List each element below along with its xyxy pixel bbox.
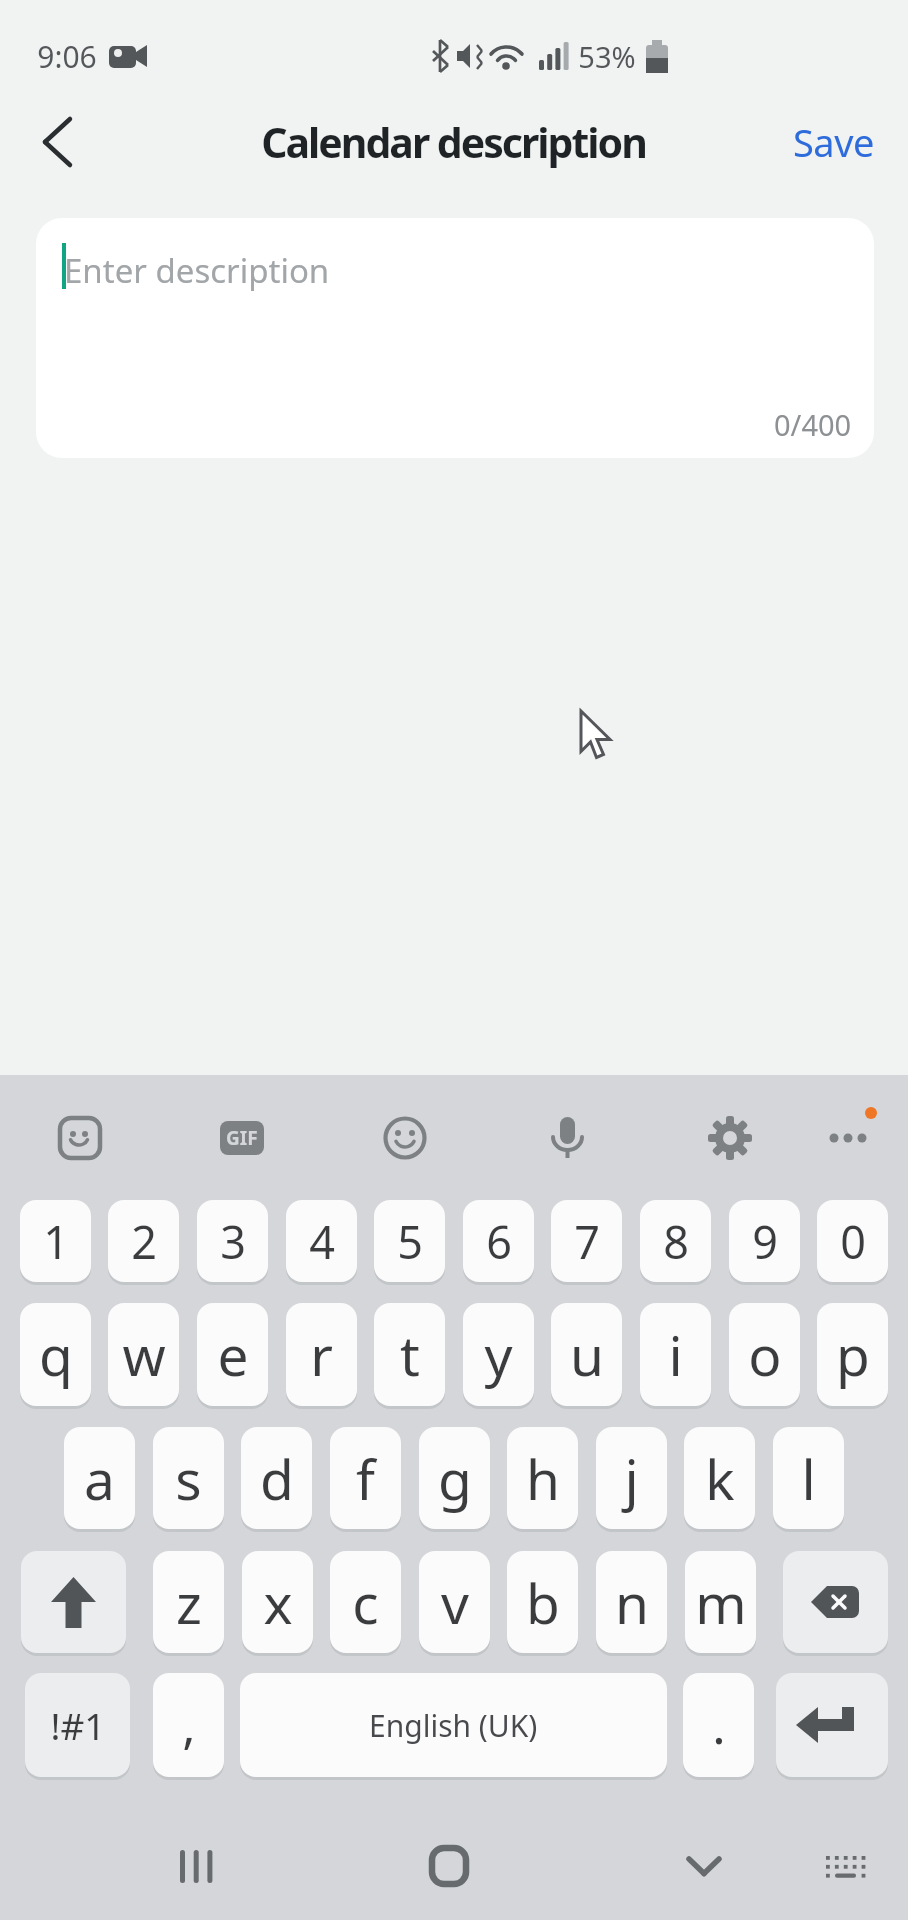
button[interactable]: p [817, 1303, 888, 1406]
button[interactable]: 4 [286, 1200, 357, 1282]
staticText: 4 [309, 1211, 335, 1272]
button[interactable] [21, 1551, 126, 1653]
staticText: Calendar description [261, 114, 646, 170]
staticText: English (UK) [369, 1705, 538, 1746]
staticText: 9:06 [37, 36, 97, 77]
staticText: 0/400 [774, 405, 852, 444]
button[interactable]: a [64, 1427, 135, 1529]
staticText: x [263, 1565, 293, 1640]
staticText: 0 [840, 1211, 866, 1272]
button[interactable]: Enter description [36, 218, 874, 458]
button[interactable]: m [685, 1551, 756, 1653]
staticText: 53% [578, 37, 636, 76]
staticText: r [310, 1317, 333, 1392]
staticText: e [217, 1317, 249, 1392]
staticText: !#1 [50, 1700, 106, 1750]
button[interactable]: 3 [197, 1200, 268, 1282]
button[interactable]: 9 [729, 1200, 800, 1282]
button[interactable]: 1 [20, 1200, 91, 1282]
button[interactable] [706, 1114, 754, 1162]
button[interactable]: u [551, 1303, 622, 1406]
staticText: f [356, 1441, 375, 1516]
staticText: c [352, 1565, 379, 1640]
staticText: p [836, 1317, 870, 1392]
button[interactable]: o [729, 1303, 800, 1406]
button[interactable]: Save [778, 110, 888, 174]
staticText: 1 [43, 1211, 69, 1272]
button[interactable] [822, 1112, 874, 1164]
staticText: t [400, 1317, 420, 1392]
staticText: i [668, 1317, 683, 1392]
staticText: l [801, 1441, 816, 1516]
staticText: o [748, 1317, 782, 1392]
staticText: s [175, 1441, 202, 1516]
button[interactable]: GIF [220, 1121, 264, 1155]
staticText: 8 [663, 1211, 689, 1272]
button[interactable] [240, 1673, 667, 1777]
button[interactable] [382, 1115, 428, 1161]
button[interactable]: v [419, 1551, 490, 1653]
button[interactable]: f [330, 1427, 401, 1529]
staticText: h [526, 1441, 560, 1516]
button[interactable]: 6 [463, 1200, 534, 1282]
staticText: w [122, 1317, 166, 1392]
button[interactable]: w [108, 1303, 179, 1406]
button[interactable]: 0 [817, 1200, 888, 1282]
button[interactable]: d [241, 1427, 312, 1529]
button[interactable]: g [419, 1427, 490, 1529]
staticText: v [441, 1565, 469, 1640]
staticText: . [712, 1691, 726, 1759]
button[interactable]: l [773, 1427, 844, 1529]
button[interactable] [168, 1838, 224, 1894]
staticText: m [695, 1565, 747, 1640]
button[interactable] [783, 1551, 888, 1653]
button[interactable]: x [242, 1551, 313, 1653]
button[interactable] [819, 1840, 871, 1892]
button[interactable]: 5 [374, 1200, 445, 1282]
button[interactable] [676, 1838, 732, 1894]
button[interactable]: !#1 [25, 1673, 130, 1777]
staticText: a [84, 1441, 115, 1516]
staticText: GIF [226, 1125, 258, 1151]
button[interactable]: y [463, 1303, 534, 1406]
button[interactable]: j [596, 1427, 667, 1529]
button[interactable] [541, 1111, 593, 1163]
button[interactable] [776, 1673, 888, 1777]
button[interactable]: i [640, 1303, 711, 1406]
button[interactable]: r [286, 1303, 357, 1406]
staticText: q [39, 1317, 73, 1392]
button[interactable]: . [683, 1673, 754, 1777]
staticText: d [260, 1441, 294, 1516]
button[interactable]: h [507, 1427, 578, 1529]
button[interactable]: n [596, 1551, 667, 1653]
button[interactable]: q [20, 1303, 91, 1406]
staticText: Save [793, 116, 874, 168]
staticText: j [624, 1441, 639, 1516]
staticText: , [182, 1691, 196, 1759]
button[interactable]: 8 [640, 1200, 711, 1282]
button[interactable]: e [197, 1303, 268, 1406]
staticText: y [484, 1317, 513, 1392]
button[interactable]: s [153, 1427, 224, 1529]
staticText: g [438, 1441, 472, 1516]
staticText: Enter description [64, 248, 330, 293]
button[interactable] [421, 1838, 477, 1894]
staticText: k [705, 1441, 735, 1516]
button[interactable] [20, 106, 92, 178]
staticText: 9 [752, 1211, 778, 1272]
button[interactable]: k [684, 1427, 755, 1529]
staticText: z [176, 1565, 202, 1640]
staticText: 5 [397, 1211, 423, 1272]
staticText: 3 [220, 1211, 246, 1272]
button[interactable]: 7 [551, 1200, 622, 1282]
button[interactable]: , [153, 1673, 224, 1777]
button[interactable]: z [153, 1551, 224, 1653]
button[interactable]: b [507, 1551, 578, 1653]
button[interactable]: t [374, 1303, 445, 1406]
staticText: 7 [574, 1211, 600, 1272]
button[interactable] [57, 1115, 103, 1161]
staticText: u [570, 1317, 604, 1392]
staticText: b [526, 1565, 560, 1640]
button[interactable]: c [330, 1551, 401, 1653]
button[interactable]: 2 [108, 1200, 179, 1282]
